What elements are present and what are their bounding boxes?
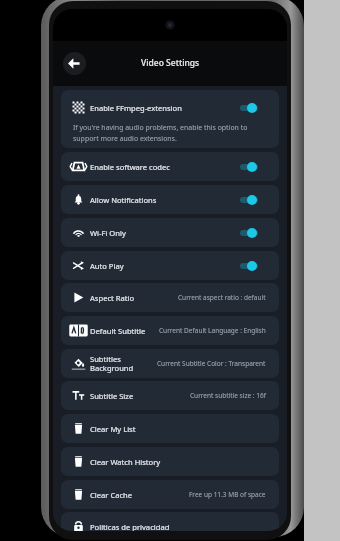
button[interactable]: Clear Cache [61,480,279,509]
button[interactable]: Subtitles Background [61,349,279,378]
staticText: Enable software codec [90,162,240,172]
staticText: Video Settings [141,57,200,69]
staticText: Current aspect ratio : default [178,293,266,302]
staticText: Current Subtitle Color : Transparent [157,359,266,368]
staticText: Clear My List [90,424,136,434]
button[interactable]: Aspect Ratio [61,283,279,312]
staticText: Free up 11.3 MB of space [189,490,266,499]
staticText: Default Subtitle [90,326,146,336]
staticText: Auto Play [90,261,240,271]
staticText: Current Default Language : English [159,326,266,335]
staticText: Wi-Fi Only [90,228,240,238]
button[interactable]: Subtitle Size [61,381,279,410]
button[interactable]: Allow Notifications [61,185,279,214]
staticText: Current subtitle size : 16f [190,391,266,400]
button[interactable]: Auto Play [61,251,279,280]
staticText: Politicas de privacidad [90,522,170,531]
staticText: Clear Watch History [90,457,161,467]
button[interactable]: Politicas de privacidad [61,512,279,531]
staticText: Subtitles Background [90,354,134,373]
button[interactable]: Clear My List [61,414,279,443]
button[interactable]: Enable software codec [61,152,279,181]
button[interactable]: Back [63,52,86,75]
button[interactable]: Default Subtitle [61,316,279,345]
staticText: Enable FFmpeg-extension [90,103,240,113]
staticText: Subtitle Size [90,391,134,401]
button[interactable]: Clear Watch History [61,447,279,476]
staticText: Clear Cache [90,490,133,500]
button[interactable]: Enable FFmpeg-extension [61,90,279,148]
staticText: Allow Notifications [90,195,240,205]
staticText: Aspect Ratio [90,293,135,303]
button[interactable]: Wi-Fi Only [61,218,279,247]
staticText: If you're having audio problems, enable … [73,123,257,143]
